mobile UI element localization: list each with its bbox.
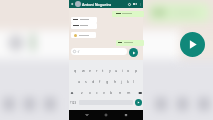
staticText: g (106, 79, 109, 84)
button[interactable] (71, 32, 96, 38)
staticText: o (127, 68, 130, 73)
staticText: v (103, 90, 105, 95)
other: Shift (70, 91, 74, 95)
staticText: y (109, 68, 111, 73)
staticText: h (114, 79, 117, 84)
staticText: b (110, 90, 113, 95)
staticText: a (78, 79, 81, 84)
other: Recent apps (124, 113, 128, 117)
staticText: l (133, 79, 134, 84)
staticText: ?123 (70, 101, 77, 105)
staticText: z (81, 90, 83, 95)
staticText: p (135, 68, 138, 73)
staticText: i (122, 68, 123, 73)
staticText: d (92, 79, 95, 84)
staticText: w (82, 68, 85, 73)
button[interactable] (71, 48, 127, 55)
button[interactable] (71, 17, 97, 23)
other: Backspace (138, 91, 142, 95)
staticText: j (121, 79, 122, 84)
button[interactable] (116, 40, 144, 46)
button[interactable]: Send (129, 48, 138, 57)
other: Back (85, 113, 89, 117)
button[interactable] (71, 23, 97, 29)
staticText: n (119, 90, 122, 95)
other: Call (128, 3, 131, 6)
staticText: m (127, 90, 131, 95)
button[interactable] (112, 11, 144, 17)
other: Back (70, 2, 74, 6)
staticText: t (102, 68, 104, 73)
staticText: c (96, 90, 98, 95)
staticText: q (74, 68, 77, 73)
staticText: r (96, 68, 98, 73)
staticText: k (127, 79, 129, 84)
button[interactable]: Back (69, 0, 143, 8)
other: Home (104, 113, 108, 117)
button[interactable]: Play video (180, 32, 205, 57)
staticText: Antoni Nogueira (82, 2, 112, 7)
button[interactable]: Enter (135, 99, 142, 106)
staticText: e (89, 68, 92, 73)
other: More options (139, 3, 142, 6)
staticText: s (85, 79, 87, 84)
staticText: x (89, 90, 91, 95)
staticText: f (99, 79, 101, 84)
other: Video call (133, 2, 137, 6)
staticText: u (115, 68, 118, 73)
